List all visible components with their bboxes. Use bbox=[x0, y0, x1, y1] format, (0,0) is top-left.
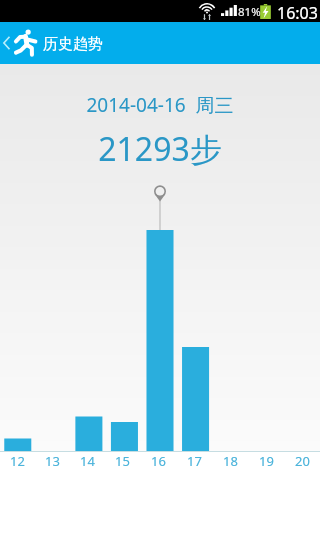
staticText: 16 bbox=[151, 452, 166, 470]
staticText: 20 bbox=[295, 452, 310, 470]
staticText: 2014-04-16 周三 bbox=[0, 92, 320, 118]
staticText: 历史趋势 bbox=[43, 35, 103, 54]
button[interactable]: Back bbox=[0, 22, 13, 64]
staticText: 19 bbox=[259, 452, 274, 470]
staticText: 12 bbox=[10, 452, 25, 470]
staticText: 16:03 bbox=[277, 2, 318, 24]
staticText: 17 bbox=[187, 452, 202, 470]
staticText: 14 bbox=[80, 452, 95, 470]
staticText: 13 bbox=[45, 452, 60, 470]
staticText: 81% bbox=[238, 4, 261, 20]
staticText: 21293步 bbox=[0, 127, 320, 171]
staticText: 15 bbox=[115, 452, 130, 470]
staticText: 18 bbox=[223, 452, 238, 470]
